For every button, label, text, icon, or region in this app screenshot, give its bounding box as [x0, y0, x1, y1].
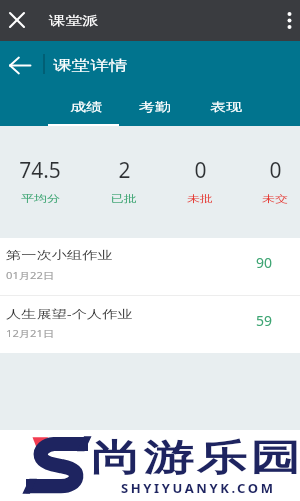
button[interactable]: 0 — [164, 156, 236, 206]
button[interactable]: 74.5 — [4, 156, 76, 206]
staticText: 74.5 — [19, 156, 61, 185]
button[interactable]: 2 — [88, 156, 160, 206]
staticText: 成绩 — [70, 100, 102, 114]
staticText: 表现 — [210, 100, 242, 114]
staticText: 未交 — [262, 192, 288, 204]
button[interactable]: 考勤 — [119, 85, 190, 126]
button[interactable]: 第一次小组作业 — [0, 238, 300, 295]
staticText: 已批 — [111, 192, 137, 204]
staticText: SHYIYUANYK.COM — [121, 479, 276, 497]
button[interactable]: 人生展望-个人作业 — [0, 296, 300, 353]
staticText: 课堂派 — [49, 13, 99, 28]
staticText: 59 — [256, 311, 273, 330]
button[interactable]: Back — [2, 47, 38, 83]
staticText: 12月21日 — [6, 327, 54, 340]
button[interactable]: Close — [0, 5, 34, 37]
staticText: 0 — [194, 156, 207, 185]
button[interactable]: 表现 — [190, 85, 261, 126]
staticText: 第一次小组作业 — [6, 247, 113, 262]
staticText: 未批 — [187, 192, 213, 204]
staticText: 人生展望-个人作业 — [6, 306, 133, 321]
staticText: 考勤 — [139, 100, 171, 114]
button[interactable]: More options — [272, 0, 300, 41]
staticText: 0 — [269, 156, 282, 185]
staticText: 01月22日 — [6, 269, 54, 282]
staticText: 尚游乐园 — [89, 435, 300, 480]
staticText: 2 — [118, 156, 131, 185]
staticText: 90 — [256, 253, 273, 272]
button[interactable]: 成绩 — [48, 85, 119, 126]
staticText: 平均分 — [21, 192, 60, 204]
button[interactable]: 0 — [239, 156, 300, 206]
staticText: 课堂详情 — [53, 57, 128, 74]
